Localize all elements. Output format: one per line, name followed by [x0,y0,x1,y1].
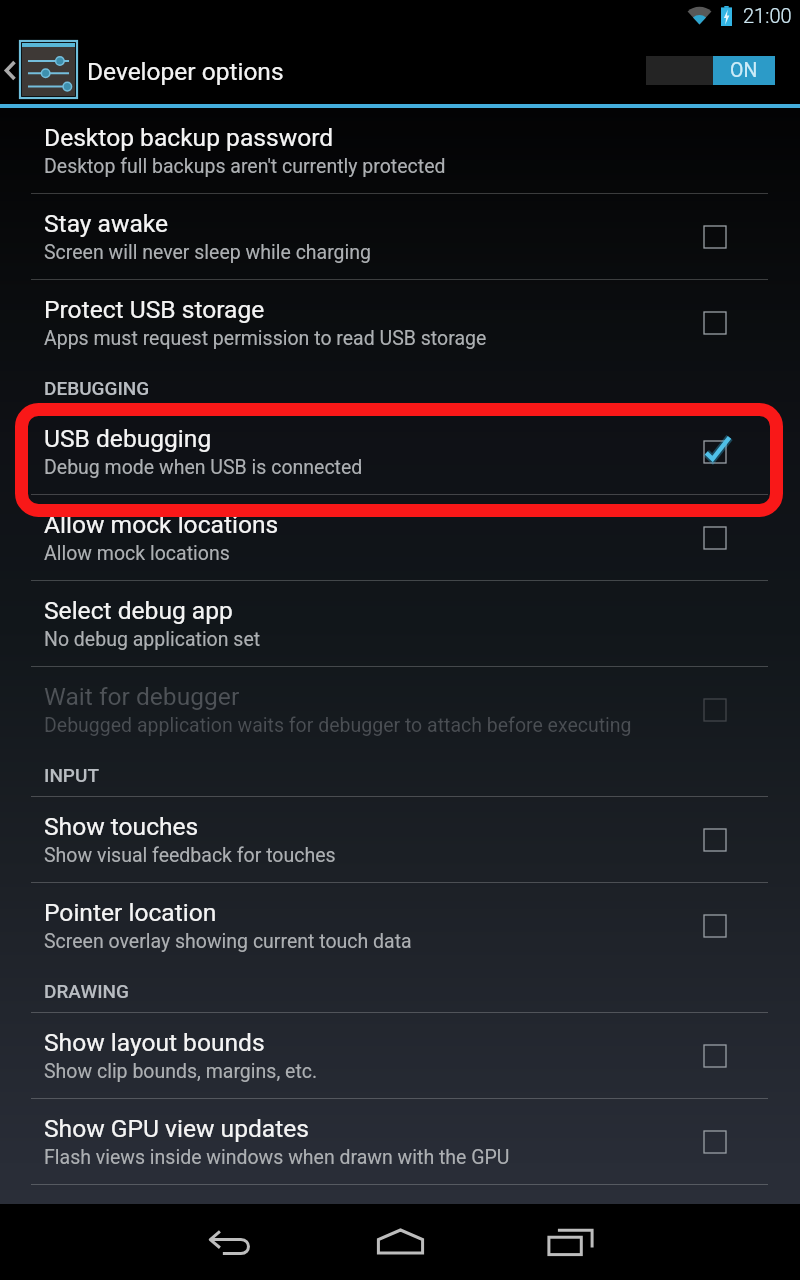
staticText: Debug mode when USB is connected [44,456,363,479]
staticText: DEBUGGING [44,377,150,399]
staticText: Wait for debugger [44,682,240,711]
staticText: Apps must request permission to read USB… [44,327,487,350]
staticText: Show layout bounds [44,1028,265,1057]
button[interactable]: Allow mock locations [0,495,800,580]
staticText: Allow mock locations [44,510,279,539]
staticText: Show touches [44,812,199,841]
button[interactable]: Pointer location [0,883,800,968]
staticText: Show visual feedback for touches [44,844,336,867]
staticText: Pointer location [44,898,217,927]
button[interactable]: Show GPU view updates [0,1099,800,1184]
button[interactable]: Navigate up [0,32,86,104]
button[interactable]: Select debug app [0,581,800,666]
staticText: 21:00 [743,4,792,27]
button[interactable]: Wait for debugger [0,667,800,752]
staticText: Desktop full backups aren't currently pr… [44,155,446,178]
button[interactable]: Developer options enabled [646,56,775,85]
staticText: No debug application set [44,628,261,651]
staticText: Show GPU view updates [44,1114,309,1143]
staticText: Protect USB storage [44,295,265,324]
button[interactable]: Home [355,1204,445,1279]
staticText: Show clip bounds, margins, etc. [44,1060,318,1083]
button[interactable]: Protect USB storage [0,280,800,365]
button[interactable]: Show touches [0,797,800,882]
button[interactable]: Desktop backup password [0,108,800,193]
button[interactable]: Stay awake [0,194,800,279]
staticText: Debugged application waits for debugger … [44,714,632,737]
button[interactable]: Show layout bounds [0,1013,800,1098]
staticText: Screen overlay showing current touch dat… [44,930,412,953]
staticText: DRAWING [44,980,129,1002]
staticText: Desktop backup password [44,123,334,152]
staticText: Allow mock locations [44,542,230,565]
button[interactable]: Recent apps [525,1204,615,1279]
button[interactable]: USB debugging [0,409,800,494]
staticText: USB debugging [44,424,212,453]
staticText: Screen will never sleep while charging [44,241,372,264]
button[interactable]: Back [185,1204,275,1279]
staticText: ON [730,59,758,82]
staticText: Select debug app [44,596,233,625]
staticText: Flash views inside windows when drawn wi… [44,1146,510,1169]
staticText: Stay awake [44,209,169,238]
staticText: INPUT [44,764,99,786]
staticText: Developer options [87,57,284,86]
